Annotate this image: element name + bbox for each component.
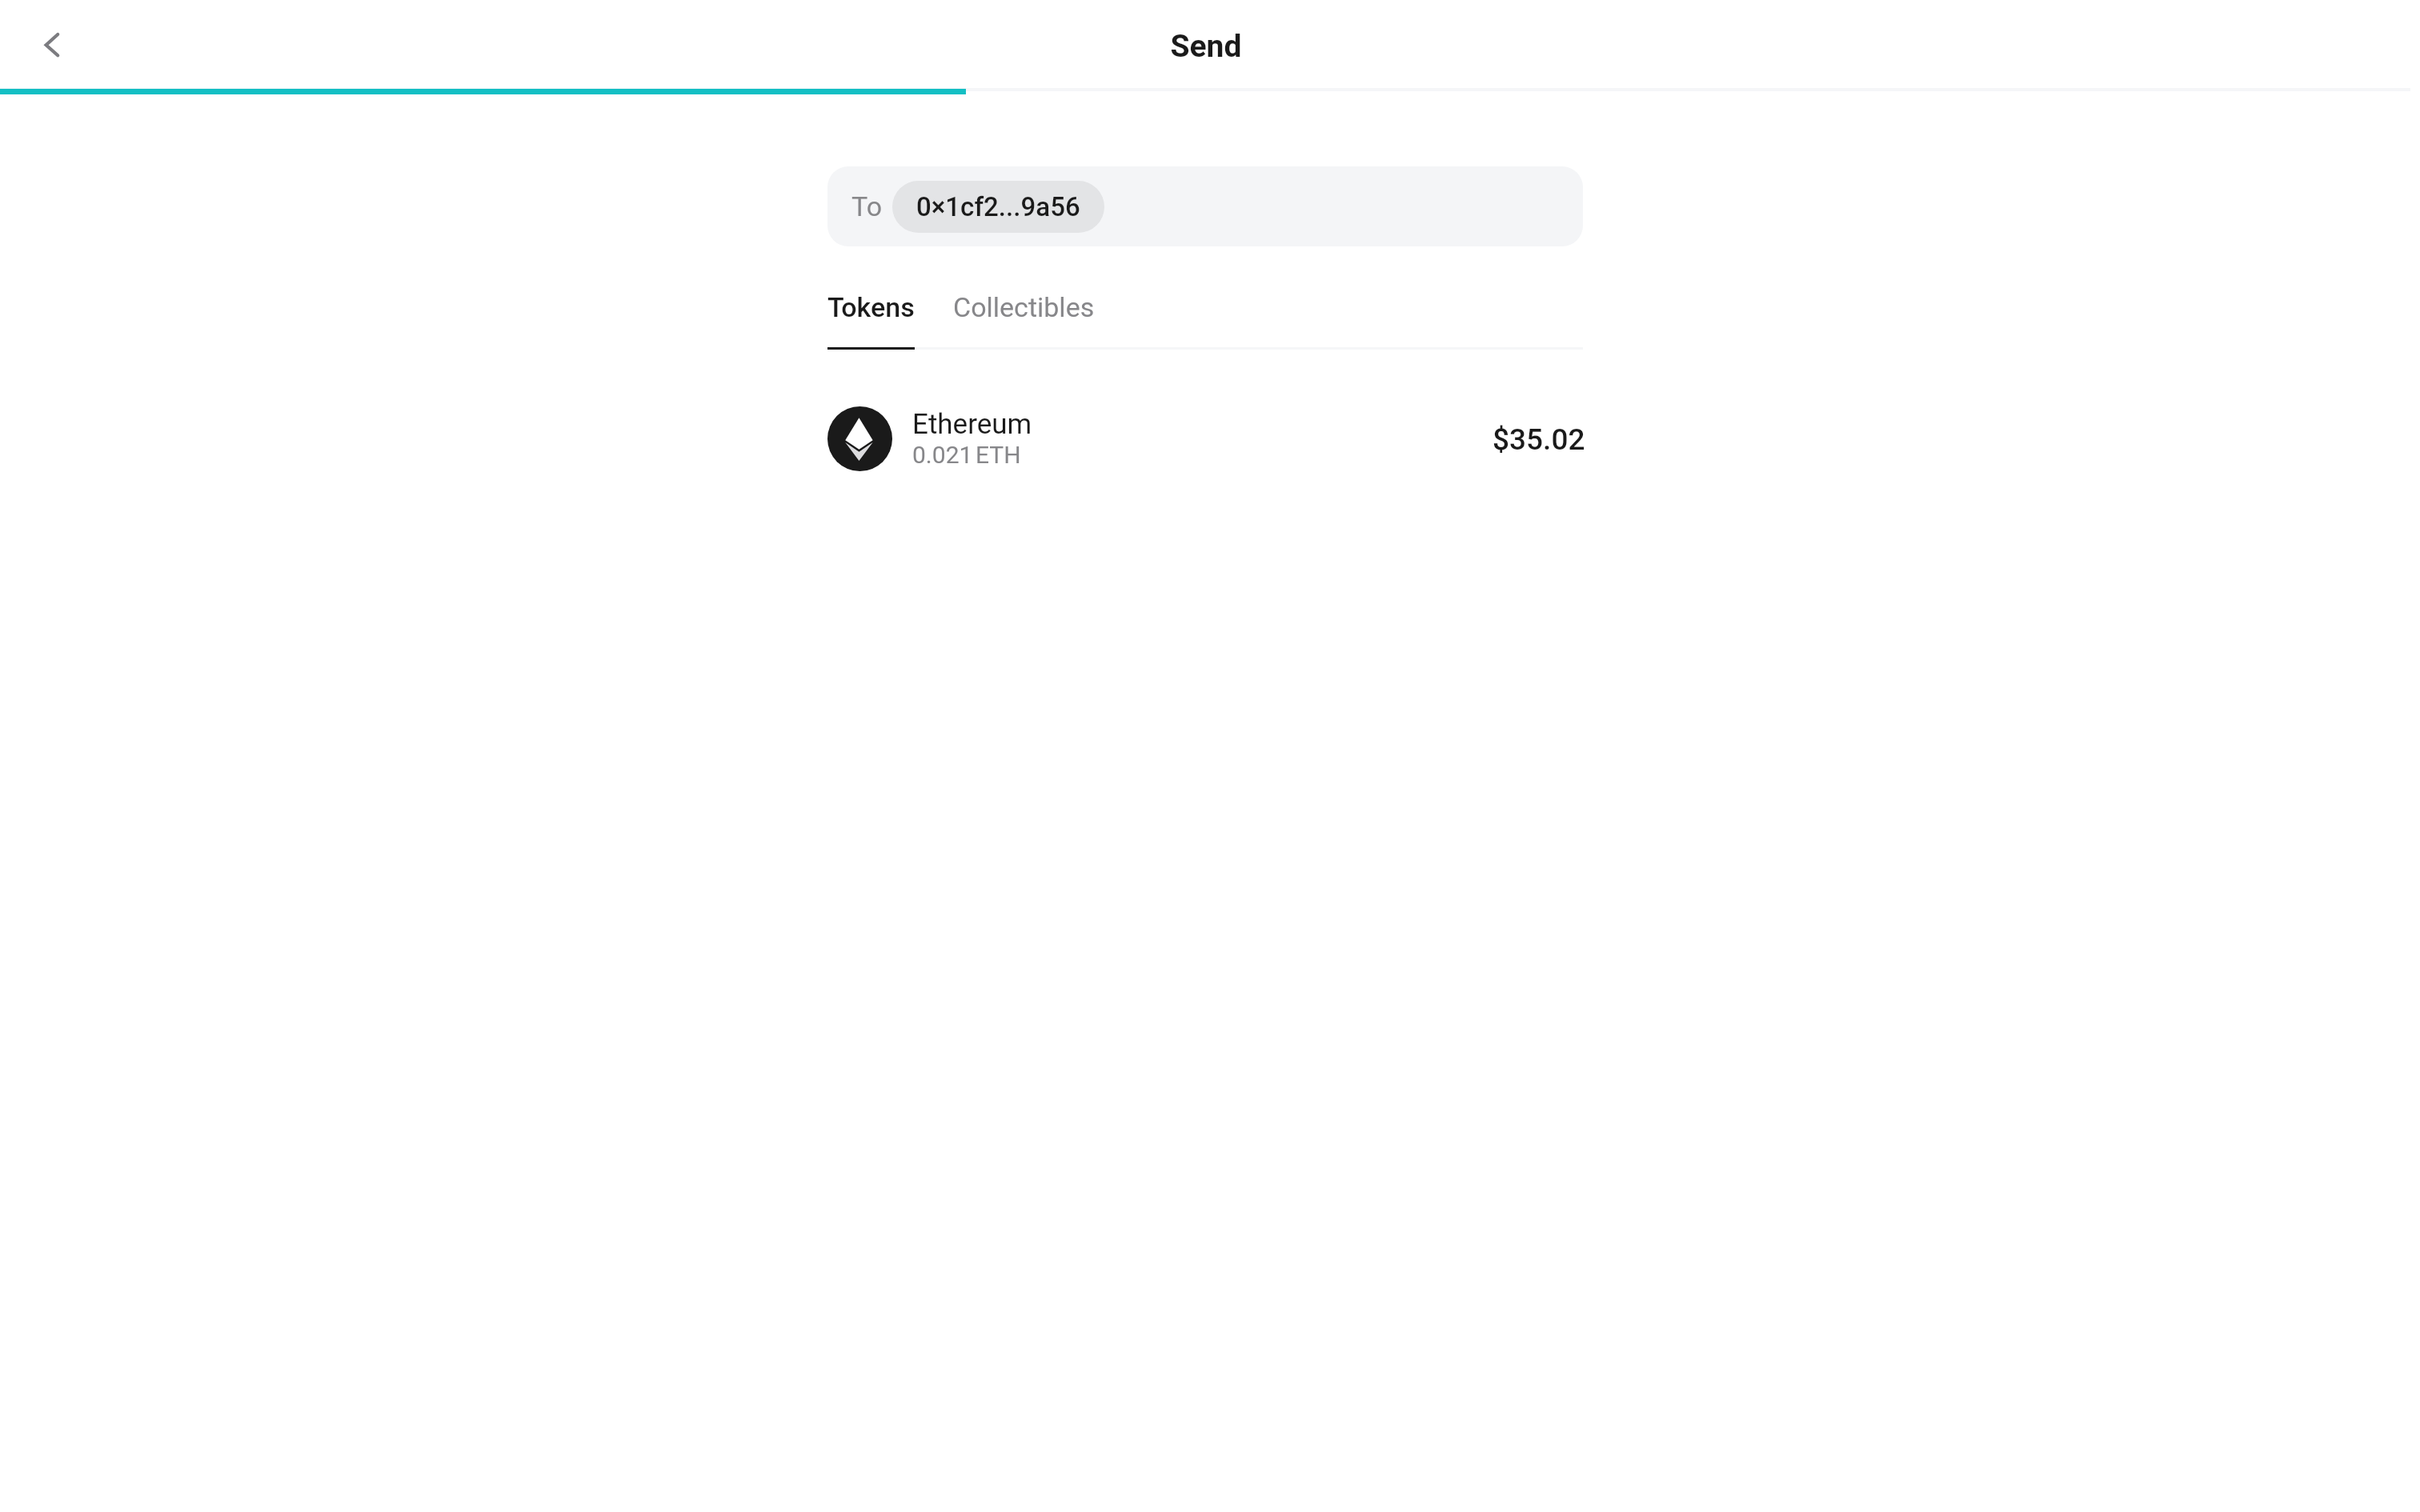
button[interactable]: Collectibles [953,291,1095,323]
staticText: Send [0,28,2412,65]
staticText: 0.021 [912,441,973,469]
staticText: Collectibles [953,291,1095,323]
staticText: $35.02 [1492,422,1585,457]
staticText: 0×1cf2...9a56 [916,191,1080,222]
button[interactable]: Back [26,19,77,70]
staticText: Tokens [827,291,915,323]
staticText: Ethereum [912,408,1032,441]
staticText: To [851,190,883,222]
button[interactable]: Tokens [827,291,915,323]
staticText: ETH [976,441,1021,469]
button[interactable]: Ethereum [827,390,1583,486]
button[interactable]: To [827,166,1583,246]
